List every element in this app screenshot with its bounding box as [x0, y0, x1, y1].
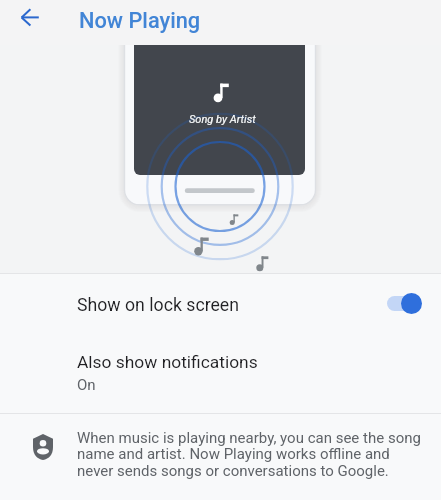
button[interactable]: Also show notifications — [0, 330, 441, 413]
staticText: When music is playing nearby, you can se… — [77, 429, 421, 480]
staticText: Song by Artist — [189, 113, 256, 126]
staticText: Also show notifications — [77, 352, 258, 372]
button[interactable]: Show on lock screen — [0, 274, 441, 330]
button[interactable]: Back — [0, 0, 58, 45]
staticText: Now Playing — [79, 8, 201, 34]
staticText: On — [77, 376, 96, 394]
staticText: Show on lock screen — [77, 295, 239, 316]
